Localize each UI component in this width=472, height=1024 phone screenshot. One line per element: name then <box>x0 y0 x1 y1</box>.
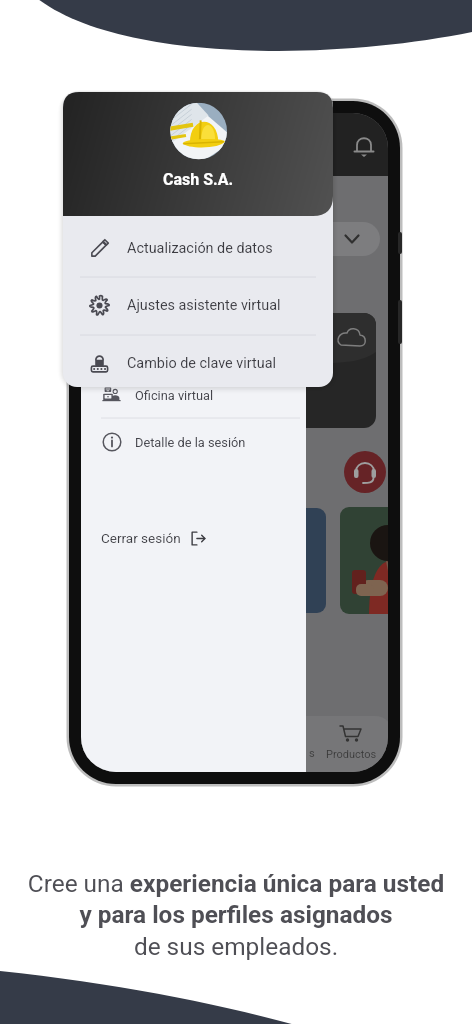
staticText: Productos <box>326 748 377 761</box>
staticText: Cerrar sesión <box>101 530 181 546</box>
staticText: Oficina virtual <box>135 388 214 403</box>
staticText: Cree una experiencia única para usted y … <box>2 869 470 961</box>
button[interactable]: Oficina virtual <box>81 372 306 418</box>
staticText: s <box>309 747 315 760</box>
staticText: Detalle de la sesión <box>135 435 246 450</box>
button[interactable]: Cerrar sesión <box>101 526 207 550</box>
staticText: Actualización de datos <box>127 240 273 257</box>
button[interactable]: Detalle de la sesión <box>81 419 306 465</box>
staticText: Cambio de clave virtual <box>127 355 276 372</box>
button[interactable]: Productos <box>322 747 380 761</box>
button[interactable]: Cambio de clave virtual <box>63 335 333 392</box>
button[interactable]: Ajustes asistente virtual <box>63 277 333 334</box>
staticText: Ajustes asistente virtual <box>127 297 281 314</box>
staticText: Cash S.A. <box>163 170 234 189</box>
button[interactable]: Actualización de datos <box>63 220 333 277</box>
